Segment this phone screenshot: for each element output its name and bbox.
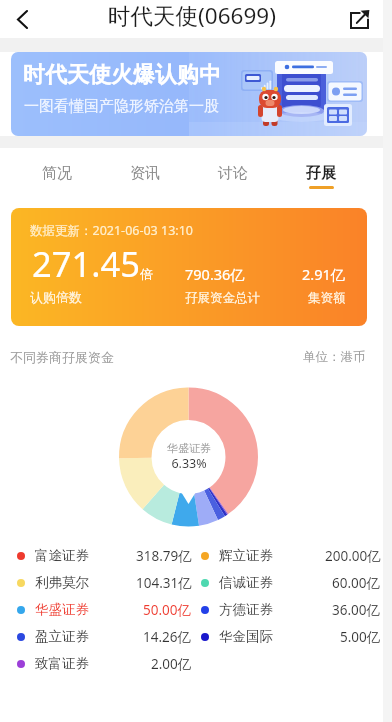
- staticText: 2.91亿: [302, 264, 346, 284]
- button[interactable]: 方德证券: [193, 596, 383, 623]
- staticText: 6.33%: [149, 455, 229, 472]
- button[interactable]: 讨论: [189, 148, 277, 208]
- staticText: 单位：港币: [303, 349, 366, 365]
- staticText: 5.00亿: [340, 628, 381, 646]
- staticText: 华金国际: [219, 628, 273, 645]
- staticText: 资讯: [130, 164, 160, 183]
- staticText: 利弗莫尔: [35, 574, 89, 591]
- button[interactable]: 孖展: [277, 148, 365, 208]
- staticText: 认购倍数: [30, 289, 82, 305]
- staticText: 集资额: [308, 290, 346, 306]
- staticText: 318.79亿: [136, 547, 192, 565]
- staticText: 60.00亿: [332, 574, 381, 592]
- staticText: 50.00亿: [143, 601, 192, 619]
- button[interactable]: 辉立证券: [193, 542, 383, 569]
- button[interactable]: 华盛证券: [0, 596, 193, 623]
- staticText: 方德证券: [219, 601, 273, 618]
- staticText: 36.00亿: [332, 601, 381, 619]
- button[interactable]: 简况: [13, 148, 101, 208]
- button[interactable]: 利弗莫尔: [0, 569, 193, 596]
- staticText: 104.31亿: [136, 574, 192, 592]
- staticText: 倍: [140, 266, 153, 282]
- staticText: 790.36亿: [185, 264, 245, 284]
- button[interactable]: 华金国际: [193, 623, 383, 650]
- staticText: 271.45: [32, 240, 140, 287]
- button[interactable]: 盈立证券: [0, 623, 193, 650]
- staticText: 2.00亿: [151, 655, 192, 673]
- staticText: 华盛证券: [35, 601, 89, 618]
- staticText: 致富证券: [35, 655, 89, 672]
- staticText: 华盛证券: [149, 441, 229, 455]
- button[interactable]: Share: [335, 0, 383, 38]
- button[interactable]: 富途证券: [0, 542, 193, 569]
- staticText: 14.26亿: [143, 628, 192, 646]
- button[interactable]: 致富证券: [0, 650, 193, 677]
- button[interactable]: 时代天使火爆认购中: [11, 52, 367, 136]
- button[interactable]: 信诚证券: [193, 569, 383, 596]
- staticText: 时代天使火爆认购中: [23, 61, 221, 89]
- staticText: 数据更新：2021-06-03 13:10: [30, 222, 193, 239]
- staticText: 辉立证券: [219, 547, 273, 564]
- button[interactable]: 资讯: [101, 148, 189, 208]
- staticText: 信诚证券: [219, 574, 273, 591]
- staticText: 讨论: [218, 164, 248, 183]
- staticText: 时代天使(06699): [108, 0, 276, 31]
- staticText: 不同券商孖展资金: [10, 349, 114, 365]
- button[interactable]: Back: [0, 0, 44, 38]
- staticText: 富途证券: [35, 547, 89, 564]
- button[interactable]: 数据更新：2021-06-03 13:10: [11, 208, 367, 326]
- staticText: 孖展: [306, 164, 336, 183]
- staticText: 200.00亿: [325, 547, 381, 565]
- staticText: 孖展资金总计: [185, 290, 260, 306]
- staticText: 一图看懂国产隐形矫治第一股: [24, 97, 219, 116]
- staticText: 简况: [42, 164, 72, 183]
- staticText: 盈立证券: [35, 628, 89, 645]
